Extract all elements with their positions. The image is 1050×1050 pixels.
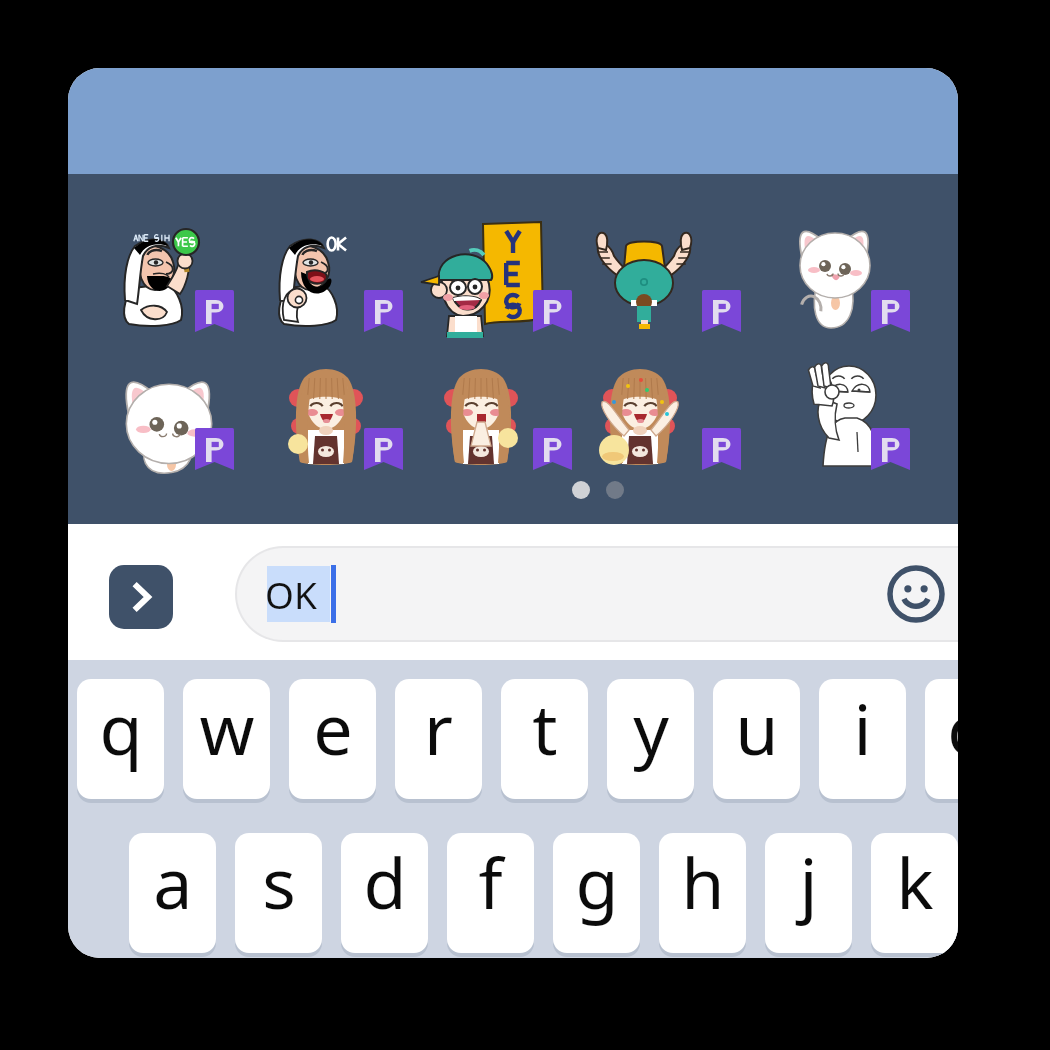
staticText: k xyxy=(896,834,934,929)
staticText: f xyxy=(478,834,503,929)
button[interactable]: Sticker 10 xyxy=(797,360,955,480)
button[interactable]: Sticker 5 xyxy=(797,222,955,342)
button[interactable]: g xyxy=(553,833,640,953)
button[interactable]: w xyxy=(183,679,270,799)
button[interactable]: j xyxy=(765,833,852,953)
staticText: g xyxy=(575,834,619,929)
button[interactable]: k xyxy=(871,833,958,953)
button[interactable]: Sticker 2 xyxy=(290,222,448,342)
button[interactable]: OK xyxy=(237,548,958,640)
button[interactable]: e xyxy=(289,679,376,799)
staticText: o xyxy=(947,680,958,775)
staticText: OK xyxy=(265,569,317,619)
staticText: r xyxy=(424,680,453,775)
button[interactable]: r xyxy=(395,679,482,799)
button[interactable]: q xyxy=(77,679,164,799)
staticText: j xyxy=(799,834,818,929)
button[interactable]: Sticker 8 xyxy=(459,360,617,480)
button[interactable]: i xyxy=(819,679,906,799)
staticText: q xyxy=(99,680,143,775)
button[interactable]: t xyxy=(501,679,588,799)
staticText: t xyxy=(532,680,558,775)
staticText: w xyxy=(199,680,255,775)
button[interactable]: Sticker 3 xyxy=(459,222,617,342)
staticText: h xyxy=(681,834,725,929)
button[interactable]: Sticker 1 xyxy=(121,222,279,342)
button[interactable]: s xyxy=(235,833,322,953)
staticText: y xyxy=(633,680,669,775)
button[interactable]: Emoji xyxy=(886,564,946,624)
button[interactable]: Page 1 xyxy=(572,481,590,499)
button[interactable]: a xyxy=(129,833,216,953)
button[interactable]: d xyxy=(341,833,428,953)
button[interactable]: Sticker 4 xyxy=(628,222,786,342)
staticText: e xyxy=(313,680,353,775)
button[interactable]: h xyxy=(659,833,746,953)
staticText: u xyxy=(735,680,779,775)
staticText: d xyxy=(363,834,407,929)
button[interactable]: Expand panel xyxy=(109,565,173,629)
button[interactable]: Sticker 7 xyxy=(290,360,448,480)
staticText: i xyxy=(853,680,872,775)
button[interactable]: o xyxy=(925,679,958,799)
button[interactable]: Sticker 9 xyxy=(628,360,786,480)
button[interactable]: f xyxy=(447,833,534,953)
button[interactable]: y xyxy=(607,679,694,799)
button[interactable]: u xyxy=(713,679,800,799)
button[interactable]: Sticker 6 xyxy=(121,360,279,480)
staticText: s xyxy=(262,834,296,929)
button[interactable]: Page 2 xyxy=(606,481,624,499)
staticText: a xyxy=(153,834,193,929)
